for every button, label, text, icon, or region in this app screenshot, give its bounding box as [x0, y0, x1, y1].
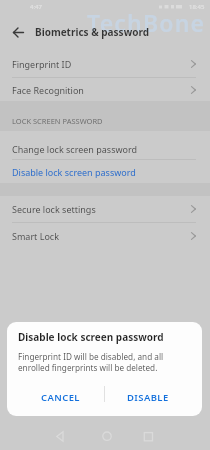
- staticText: Secure lock settings: [12, 203, 96, 215]
- button[interactable]: Change lock screen password: [0, 131, 210, 159]
- button[interactable]: Face Recognition: [0, 78, 210, 101]
- staticText: 18:45: [189, 3, 205, 11]
- button[interactable]: DISABLE: [104, 385, 192, 409]
- staticText: Fingerprint ID: [12, 58, 72, 70]
- button[interactable]: Smart Lock: [0, 223, 210, 248]
- staticText: Change lock screen password: [12, 143, 138, 155]
- staticText: Smart Lock: [12, 230, 59, 242]
- button[interactable]: CANCEL: [17, 385, 104, 409]
- staticText: DISABLE: [127, 391, 169, 404]
- staticText: LOCK SCREEN PASSWORD: [12, 116, 103, 126]
- staticText: Face Recognition: [12, 84, 84, 96]
- staticText: Disable lock screen password: [12, 166, 136, 178]
- staticText: TechBone: [87, 7, 206, 38]
- button[interactable]: Disable lock screen password: [0, 160, 210, 183]
- staticText: Fingerprint ID will be disabled, and all…: [18, 351, 164, 373]
- staticText: 4:47: [30, 3, 42, 11]
- staticText: CANCEL: [41, 391, 80, 404]
- button[interactable]: Secure lock settings: [0, 196, 210, 222]
- staticText: Disable lock screen password: [18, 330, 164, 344]
- staticText: Biometrics & password: [35, 25, 150, 39]
- button[interactable]: [8, 22, 28, 42]
- button[interactable]: Fingerprint ID: [0, 50, 210, 77]
